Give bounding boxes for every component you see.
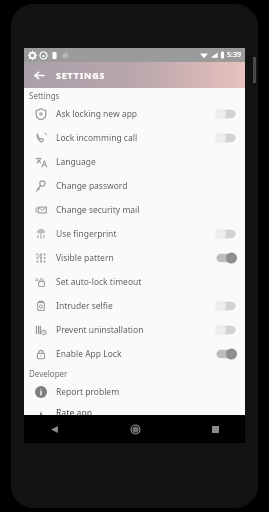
button[interactable]: Toggle <box>214 347 238 361</box>
button[interactable]: Toggle <box>214 227 238 241</box>
staticText: Change security mail <box>56 204 140 216</box>
staticText: Intruder selfie <box>56 300 113 312</box>
button[interactable]: Toggle <box>214 131 238 145</box>
staticText: Use fingerprint <box>56 228 117 240</box>
staticText: Prevent uninstallation <box>56 324 144 336</box>
button[interactable]: Change password <box>24 174 245 198</box>
staticText: Lock incomming call <box>56 132 138 144</box>
button[interactable]: Lock incomming call <box>24 126 245 150</box>
staticText: Change password <box>56 180 128 192</box>
button[interactable]: Toggle <box>214 251 238 265</box>
staticText: Settings <box>29 90 60 101</box>
button[interactable]: Prevent uninstallation <box>24 318 245 342</box>
button[interactable]: Home <box>127 421 143 437</box>
button[interactable]: Back <box>46 421 62 437</box>
button[interactable]: Language <box>24 150 245 174</box>
button[interactable]: Use fingerprint <box>24 222 245 246</box>
staticText: Rate app <box>56 407 92 419</box>
staticText: Developer <box>29 368 68 379</box>
staticText: Visible pattern <box>56 252 114 264</box>
staticText: 5:39 <box>227 50 241 60</box>
button[interactable]: Intruder selfie <box>24 294 245 318</box>
staticText: Ask locking new app <box>56 108 138 120</box>
button[interactable]: Ask locking new app <box>24 102 245 126</box>
button[interactable]: Change security mail <box>24 198 245 222</box>
button[interactable]: Toggle <box>214 323 238 337</box>
staticText: SETTINGS <box>56 69 106 81</box>
staticText: Report problem <box>56 386 120 398</box>
button[interactable]: Visible pattern <box>24 246 245 270</box>
button[interactable]: Back <box>30 66 48 84</box>
button[interactable]: Toggle <box>214 299 238 313</box>
button[interactable]: Rate app <box>24 404 245 430</box>
button[interactable]: Toggle <box>214 107 238 121</box>
staticText: Language <box>56 156 96 168</box>
button[interactable]: Report problem <box>24 380 245 404</box>
staticText: Set auto-lock timeout <box>56 276 142 288</box>
button[interactable]: Recents <box>207 421 223 437</box>
button[interactable]: Enable App Lock <box>24 342 245 366</box>
staticText: Rate me 5 stars <box>56 419 100 427</box>
staticText: Enable App Lock <box>56 348 122 360</box>
button[interactable]: Set auto-lock timeout <box>24 270 245 294</box>
